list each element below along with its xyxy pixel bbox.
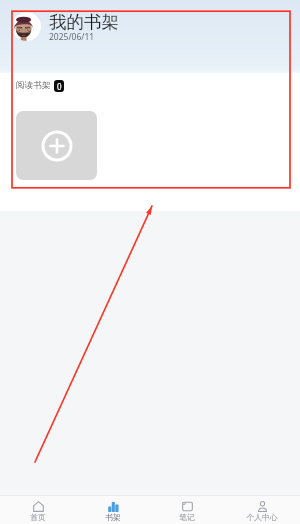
button[interactable]: 书架: [77, 496, 149, 522]
button[interactable]: 首页: [2, 496, 74, 522]
staticText: 我的书架: [49, 11, 119, 33]
button[interactable]: 个人中心: [226, 496, 298, 522]
staticText: 书架: [105, 512, 121, 522]
staticText: 个人中心: [246, 512, 278, 522]
staticText: 首页: [30, 512, 46, 522]
staticText: 2025/06/11: [49, 31, 95, 43]
staticText: 0: [57, 81, 62, 92]
staticText: 笔记: [179, 512, 195, 522]
button[interactable]: 添加书籍: [16, 111, 97, 180]
staticText: 阅读书架: [16, 80, 51, 91]
button[interactable]: 笔记: [151, 496, 223, 522]
